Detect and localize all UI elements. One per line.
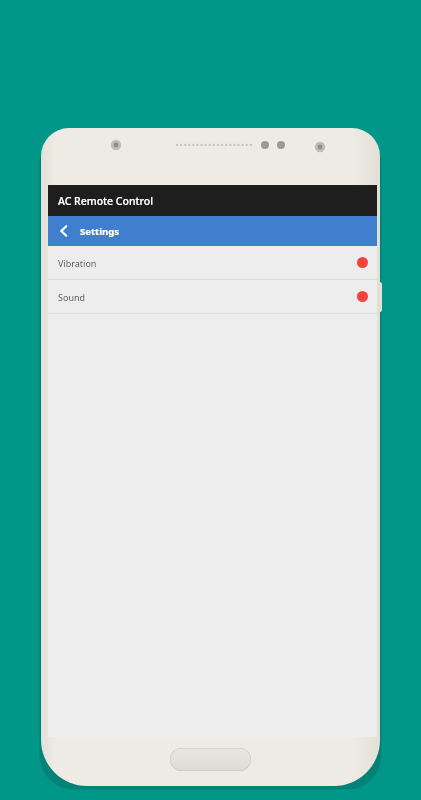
staticText: Vibration: [58, 257, 97, 269]
button[interactable]: Sound toggle: [357, 291, 368, 302]
staticText: AC Remote Control: [58, 194, 154, 208]
button[interactable]: Home: [170, 748, 251, 771]
staticText: Sound: [58, 291, 86, 303]
button[interactable]: AC Remote Control: [48, 185, 377, 216]
button[interactable]: Vibration toggle: [357, 257, 368, 268]
button[interactable]: Vibration: [48, 246, 377, 279]
button[interactable]: Sound: [48, 280, 377, 313]
staticText: Settings: [80, 225, 119, 238]
button[interactable]: Back to Settings: [48, 216, 377, 246]
